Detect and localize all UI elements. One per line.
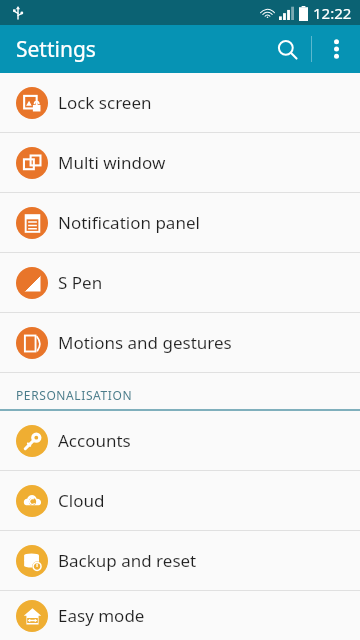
button[interactable]: Notification panel	[0, 193, 360, 252]
button[interactable]: Cloud	[0, 471, 360, 530]
button[interactable]: Search	[263, 25, 311, 73]
staticText: Lock screen	[58, 91, 152, 114]
button[interactable]: Motions and gestures	[0, 313, 360, 372]
staticText: Easy mode	[58, 604, 145, 627]
staticText: Backup and reset	[58, 549, 197, 572]
button[interactable]: More options	[312, 25, 360, 73]
button[interactable]: Easy mode	[0, 591, 360, 640]
staticText: 12:22	[313, 3, 352, 23]
staticText: Settings	[16, 35, 96, 64]
staticText: S Pen	[58, 271, 103, 294]
staticText: Cloud	[58, 489, 105, 512]
button[interactable]: S Pen	[0, 253, 360, 312]
staticText: Accounts	[58, 429, 131, 452]
button[interactable]: Backup and reset	[0, 531, 360, 590]
button[interactable]: Accounts	[0, 411, 360, 470]
staticText: Notification panel	[58, 211, 200, 234]
staticText: Motions and gestures	[58, 331, 232, 354]
button[interactable]: Multi window	[0, 133, 360, 192]
staticText: PERSONALISATION	[16, 387, 133, 403]
staticText: Multi window	[58, 151, 166, 174]
button[interactable]: Lock screen	[0, 73, 360, 132]
